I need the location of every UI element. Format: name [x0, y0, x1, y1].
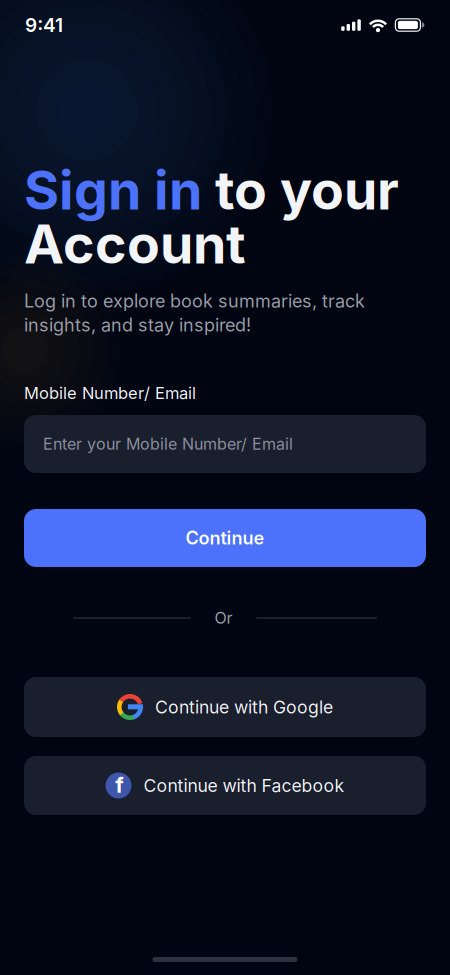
staticText: 9:41: [25, 13, 63, 37]
button[interactable]: Continue with Google: [24, 677, 426, 737]
staticText: f: [115, 772, 123, 798]
staticText: insights, and stay inspired!: [24, 314, 251, 336]
staticText: Or: [214, 608, 232, 628]
staticText: Continue with Facebook: [143, 775, 344, 796]
staticText: Account: [24, 212, 246, 276]
staticText: Continue: [185, 527, 264, 549]
staticText: Mobile Number/ Email: [24, 383, 196, 403]
button[interactable]: Continue: [24, 509, 426, 567]
staticText: Sign in: [24, 158, 202, 222]
staticText: Continue with Google: [155, 696, 333, 718]
button[interactable]: f: [24, 756, 426, 815]
staticText: Enter your Mobile Number/ Email: [43, 434, 293, 454]
staticText: Log in to explore book summaries, track: [24, 290, 365, 312]
staticText: to your: [202, 158, 399, 222]
